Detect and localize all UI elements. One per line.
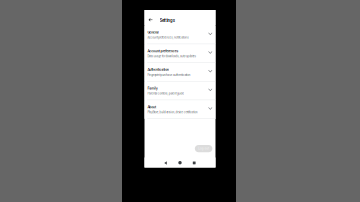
staticText: Authentication [147,68,169,72]
button[interactable]: About [144,100,215,119]
button[interactable]: Family [144,81,215,100]
button[interactable]: Back [164,161,167,165]
staticText: About [147,105,156,109]
staticText: Parental controls, parent guide [147,92,184,95]
staticText: General [147,30,159,34]
staticText: Play Store, build version, device certif… [147,110,198,114]
staticText: Account preferences, notifications [147,36,189,39]
button[interactable]: Log out [195,145,212,152]
staticText: Data usage for downloads, auto-updates [147,54,197,58]
staticText: Fingerprint purchase authentication [147,73,191,77]
button[interactable]: Back [144,10,215,25]
button[interactable]: General [144,25,215,44]
button[interactable]: Recent apps [193,161,196,164]
button[interactable]: Account preferences [144,44,215,63]
staticText: Account preferences [147,49,179,53]
button[interactable]: Home [178,161,182,164]
staticText: Family [147,86,158,90]
staticText: Settings [159,18,175,23]
button[interactable]: Authentication [144,63,215,81]
